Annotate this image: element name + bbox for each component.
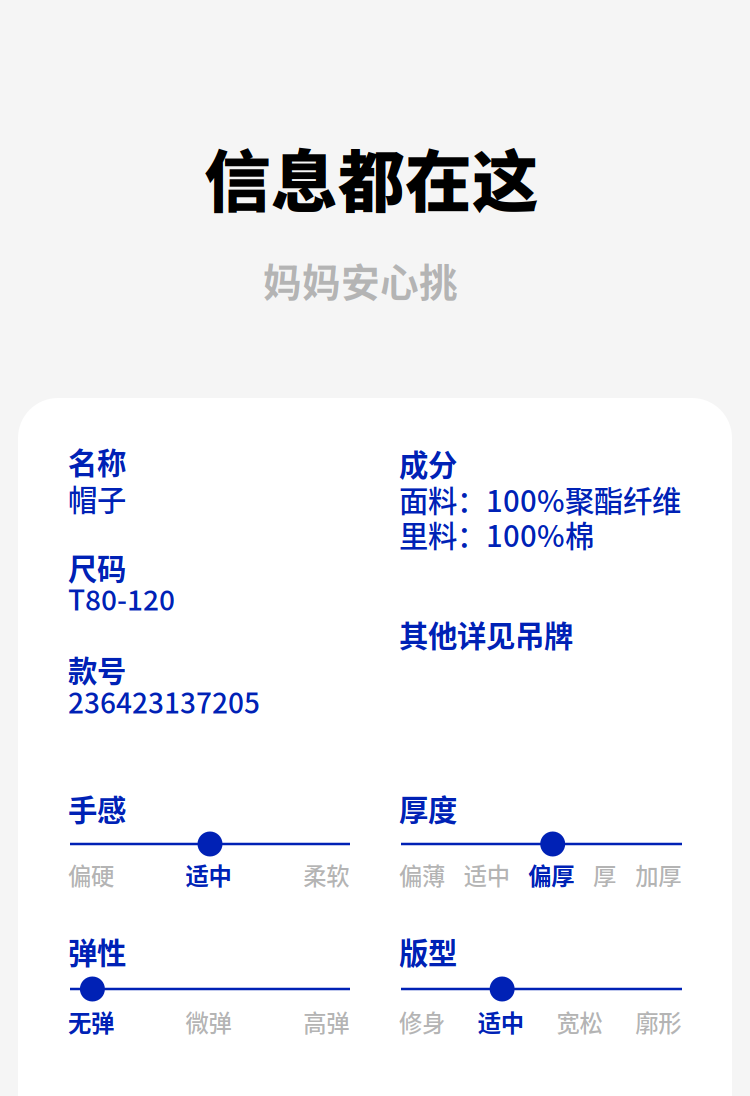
button[interactable]: 无弹 xyxy=(68,1005,114,1039)
button[interactable]: 加厚 xyxy=(635,858,681,892)
staticText: T80-120 xyxy=(68,578,175,618)
staticText: 厚度 xyxy=(399,787,457,829)
button[interactable]: 廓形 xyxy=(635,1005,681,1039)
button[interactable]: 修身 xyxy=(399,1005,445,1039)
staticText: 无弹 xyxy=(68,1005,114,1039)
button[interactable]: 偏硬 xyxy=(68,858,114,892)
button[interactable]: 适中 xyxy=(478,1005,524,1039)
staticText: 弹性 xyxy=(68,930,126,972)
button[interactable]: 宽松 xyxy=(556,1005,602,1039)
staticText: 廓形 xyxy=(635,1005,681,1039)
staticText: 尺码 xyxy=(68,546,126,588)
button[interactable]: 柔软 xyxy=(303,858,349,892)
staticText: 适中 xyxy=(186,858,232,892)
button[interactable]: 偏厚 xyxy=(528,858,574,892)
staticText: 加厚 xyxy=(635,858,681,892)
button[interactable]: 高弹 xyxy=(303,1005,349,1039)
staticText: 信息都在这 xyxy=(204,129,539,225)
staticText: 适中 xyxy=(464,858,510,892)
staticText: 偏薄 xyxy=(399,858,445,892)
staticText: 手感 xyxy=(68,787,126,829)
button[interactable]: 适中 xyxy=(464,858,510,892)
button[interactable]: 适中 xyxy=(186,858,232,892)
staticText: 厚 xyxy=(593,858,616,892)
staticText: 里料：100%棉 xyxy=(399,513,594,555)
staticText: 帽子 xyxy=(68,477,126,519)
button[interactable]: 微弹 xyxy=(186,1005,232,1039)
staticText: 高弹 xyxy=(303,1005,349,1039)
staticText: 偏厚 xyxy=(528,858,574,892)
staticText: 柔软 xyxy=(303,858,349,892)
staticText: 成分 xyxy=(399,442,457,484)
staticText: 236423137205 xyxy=(68,681,260,721)
staticText: 宽松 xyxy=(556,1005,602,1039)
button[interactable]: 厚 xyxy=(593,858,616,892)
staticText: 偏硬 xyxy=(68,858,114,892)
staticText: 名称 xyxy=(68,440,126,482)
staticText: 其他详见吊牌 xyxy=(399,613,573,655)
staticText: 妈妈安心挑 xyxy=(263,252,458,308)
staticText: 面料：100%聚酯纤维 xyxy=(399,478,681,520)
staticText: 适中 xyxy=(478,1005,524,1039)
staticText: 修身 xyxy=(399,1005,445,1039)
staticText: 版型 xyxy=(399,930,457,972)
staticText: 微弹 xyxy=(186,1005,232,1039)
button[interactable]: 偏薄 xyxy=(399,858,445,892)
staticText: 款号 xyxy=(68,648,126,690)
